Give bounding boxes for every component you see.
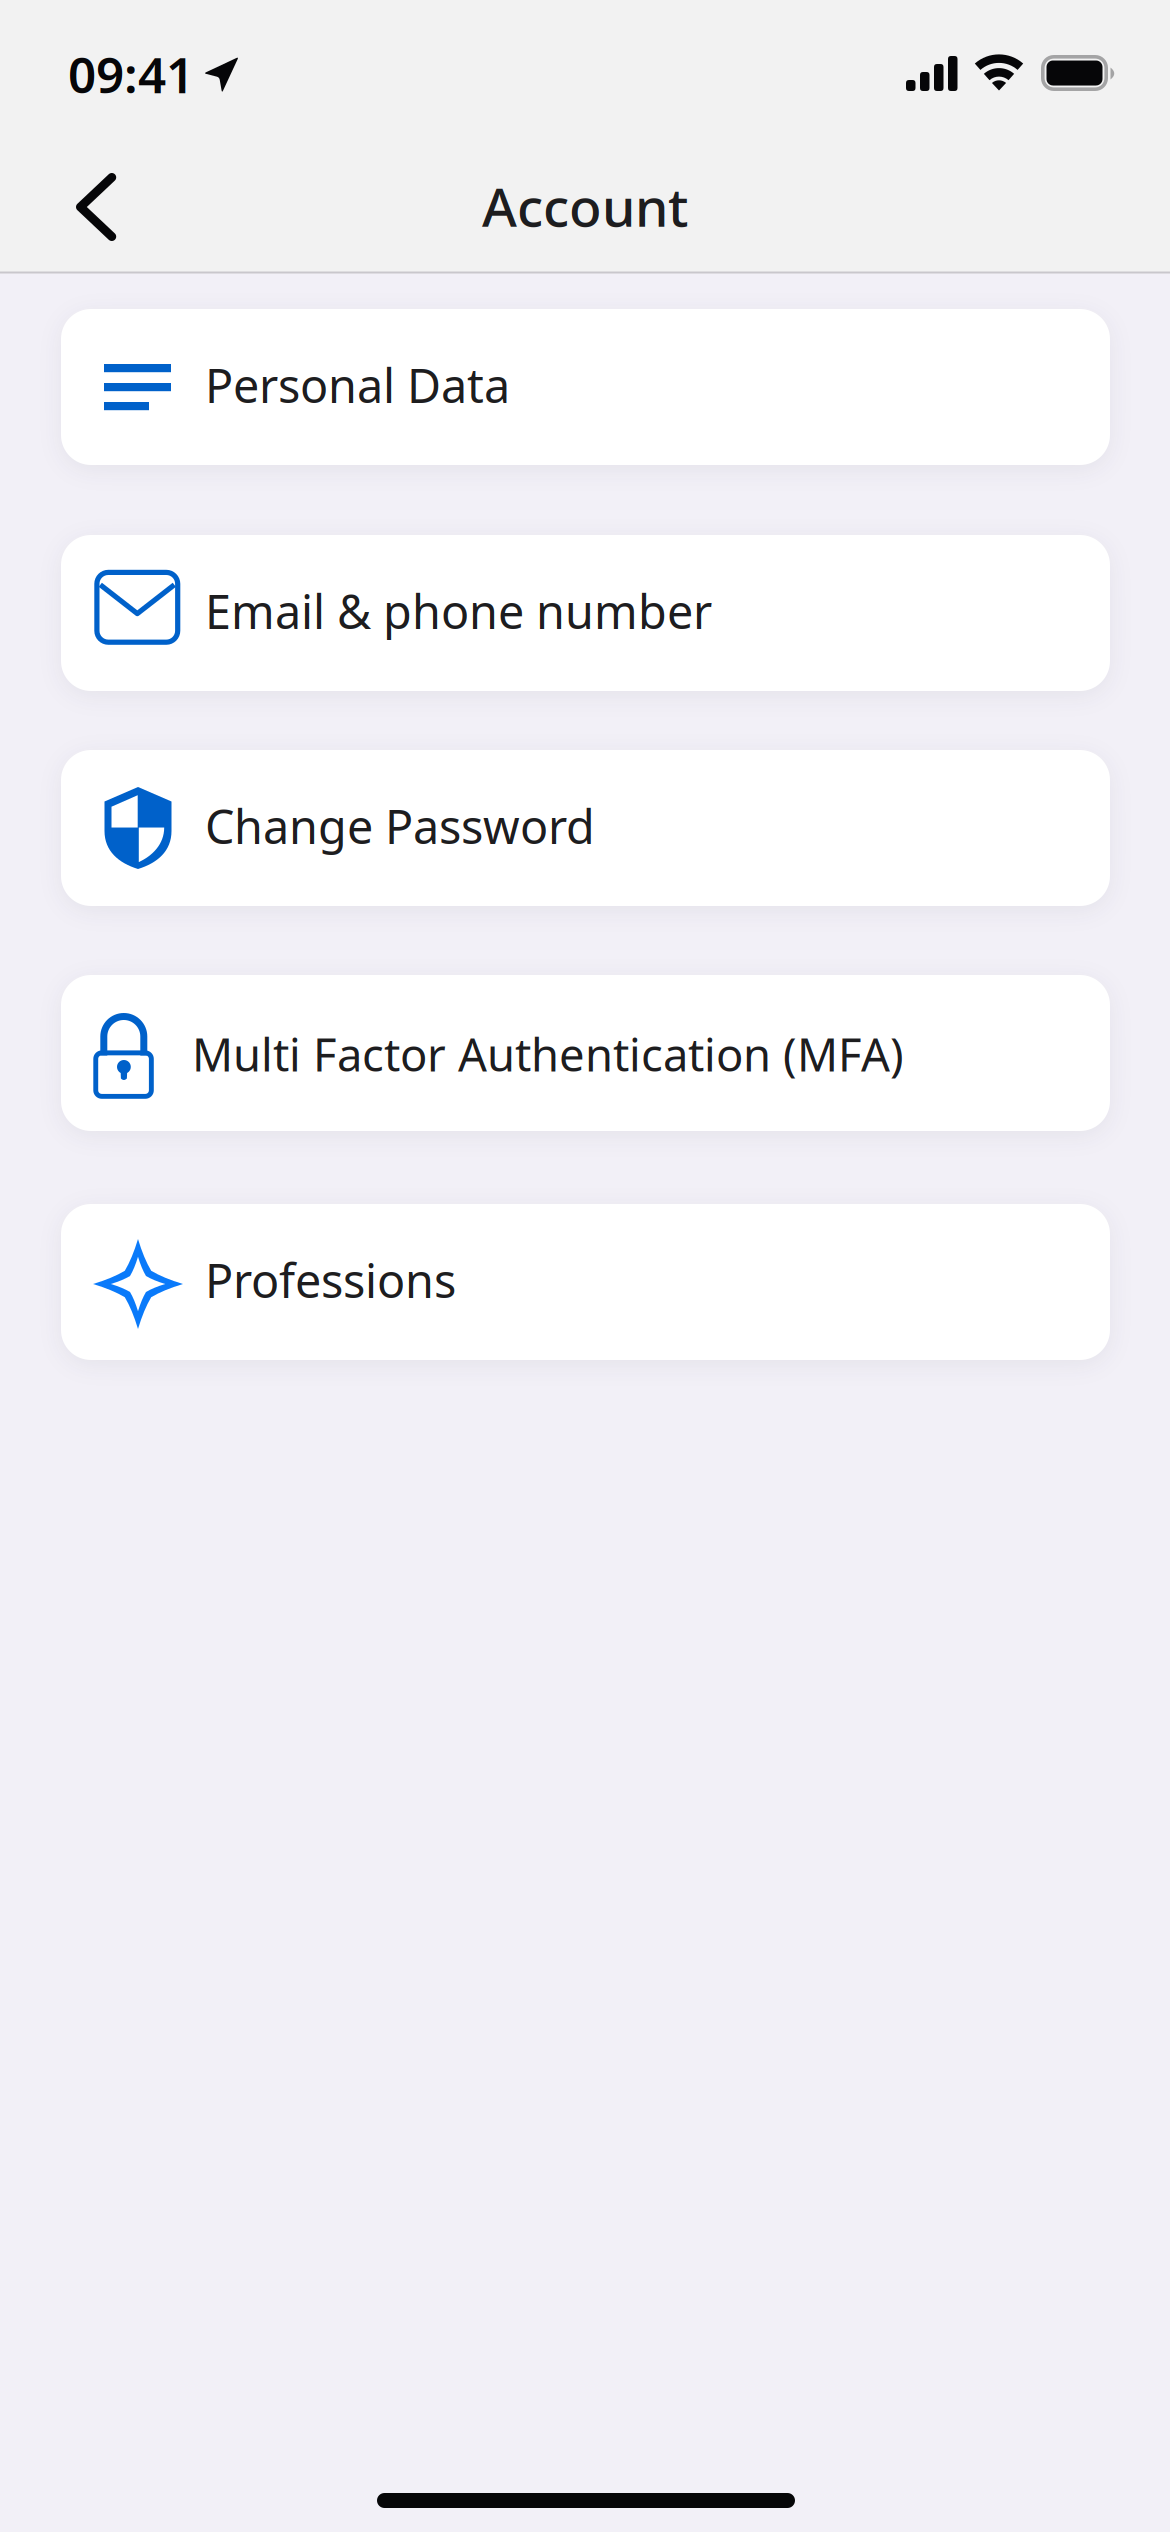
staticText: Email & phone number [205, 580, 712, 642]
button[interactable]: Professions [61, 1204, 1110, 1360]
button[interactable]: Back [52, 147, 172, 267]
staticText: 09:41 [68, 41, 194, 107]
staticText: Personal Data [205, 354, 510, 416]
button[interactable]: Change Password [61, 750, 1110, 906]
staticText: Account [482, 171, 688, 241]
button[interactable]: Multi Factor Authentication (MFA) [61, 975, 1110, 1131]
staticText: Professions [205, 1249, 456, 1311]
button[interactable]: Email & phone number [61, 535, 1110, 691]
button[interactable]: Personal Data [61, 309, 1110, 465]
staticText: Change Password [205, 795, 595, 857]
staticText: Multi Factor Authentication (MFA) [192, 1024, 904, 1084]
